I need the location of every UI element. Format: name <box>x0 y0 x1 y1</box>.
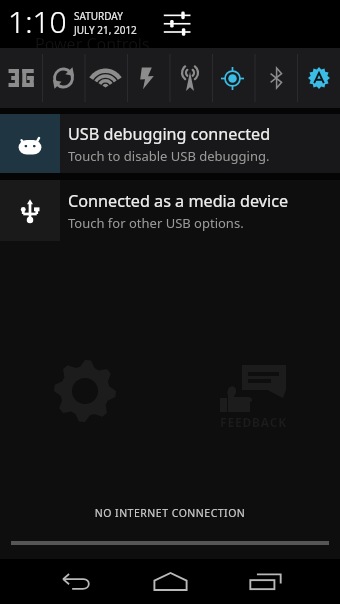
button[interactable]: Connected as a media device <box>0 180 340 241</box>
button[interactable]: Quick settings <box>157 3 197 43</box>
button[interactable]: Home <box>146 559 194 604</box>
staticText: Touch to disable USB debugging. <box>68 147 270 165</box>
button[interactable]: Bluetooth <box>254 48 297 108</box>
button[interactable]: Auto brightness <box>297 48 340 108</box>
button[interactable]: Auto sync <box>42 48 84 108</box>
button[interactable]: Back <box>52 559 100 604</box>
staticText: 1:10 <box>8 1 67 42</box>
button[interactable]: Mobile data 3G <box>0 48 42 108</box>
staticText: JULY 21, 2012 <box>74 23 137 37</box>
button[interactable]: USB debugging connected <box>0 114 340 173</box>
button[interactable]: Mobile network <box>168 48 211 108</box>
staticText: USB debugging connected <box>68 123 271 145</box>
button[interactable]: Flashlight <box>126 48 168 108</box>
staticText: Connected as a media device <box>68 190 289 212</box>
staticText: Touch for other USB options. <box>68 214 244 232</box>
button[interactable]: Recent apps <box>241 559 289 604</box>
staticText: NO INTERNET CONNECTION <box>0 506 340 520</box>
staticText: FEEDBACK <box>220 414 287 430</box>
staticText: SATURDAY <box>74 9 123 23</box>
staticText: Power Controls <box>35 33 150 55</box>
button[interactable]: Wi-Fi <box>84 48 126 108</box>
button[interactable]: GPS <box>211 48 254 108</box>
